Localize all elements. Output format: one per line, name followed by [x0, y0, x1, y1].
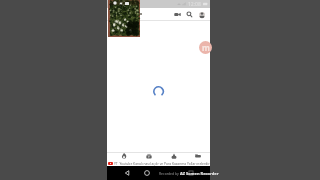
- button[interactable]: Back: [120, 166, 134, 180]
- staticText: AZ Screen Recorder: [180, 171, 219, 176]
- staticText: YT Youtube Kanalı nasıl açılır ve Para K…: [114, 161, 211, 165]
- button[interactable]: Library: [192, 152, 204, 160]
- button[interactable]: Subscriptions: [143, 152, 155, 160]
- button[interactable]: Video preview: [108, 0, 140, 37]
- staticText: m: [202, 42, 210, 53]
- button[interactable]: Home: [140, 166, 154, 180]
- staticText: 12:08: [188, 1, 201, 8]
- button[interactable]: Create video: [171, 8, 183, 21]
- button[interactable]: Search: [183, 8, 195, 21]
- button[interactable]: Messenger chat head: [199, 41, 212, 54]
- button[interactable]: Trending: [118, 152, 130, 160]
- staticText: Recorded by: [159, 171, 180, 176]
- button[interactable]: Account: [196, 8, 208, 21]
- button[interactable]: Inbox: [168, 152, 180, 160]
- button[interactable]: Recent apps: [184, 166, 198, 180]
